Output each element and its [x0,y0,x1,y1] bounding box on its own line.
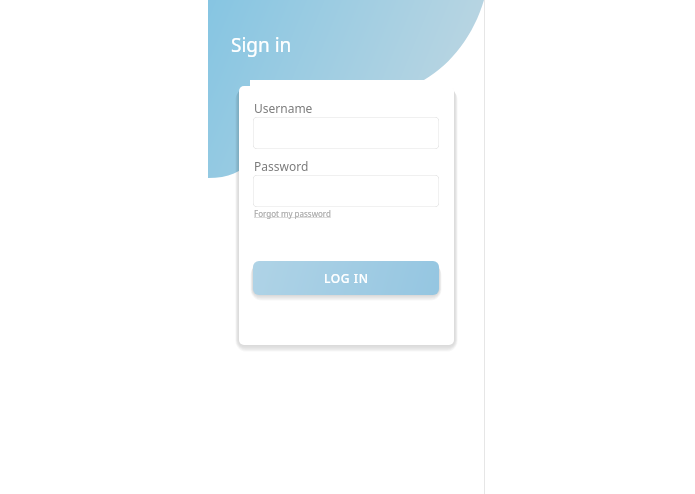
button[interactable]: Forgot my password [254,208,331,219]
staticText: Forgot my password [254,208,331,219]
staticText: LOG IN [324,270,369,286]
button[interactable]: LOG IN [253,261,439,295]
button[interactable]: Username input [253,117,439,149]
staticText: Username [254,100,313,116]
button[interactable]: Password input [253,175,439,207]
staticText: Password [254,158,309,174]
staticText: Sign in [231,32,292,58]
